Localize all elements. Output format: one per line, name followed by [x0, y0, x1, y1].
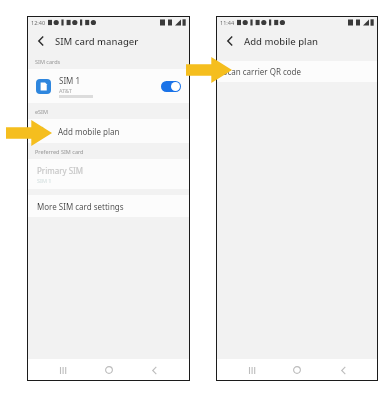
staticText: Scan carrier QR code	[223, 66, 302, 77]
staticText: eSIM	[35, 108, 48, 115]
button[interactable]: Back	[333, 360, 353, 380]
button[interactable]: Recents	[53, 360, 73, 380]
button[interactable]: Add mobile plan	[27, 119, 190, 143]
staticText: Preferred SIM card	[35, 148, 84, 155]
button[interactable]: Toggle SIM 1	[161, 81, 181, 92]
staticText: 12:40	[31, 19, 46, 26]
button[interactable]: SIM 1	[27, 69, 190, 103]
staticText: SIM 1	[59, 75, 81, 86]
button[interactable]: More SIM card settings	[27, 195, 190, 217]
staticText: More SIM card settings	[37, 201, 124, 212]
button[interactable]: Primary SIM	[27, 159, 190, 189]
button[interactable]: Back	[144, 360, 164, 380]
button[interactable]: Scan carrier QR code	[216, 61, 378, 82]
button[interactable]: Back	[222, 33, 238, 49]
staticText: AT&T	[59, 87, 72, 94]
staticText: Primary SIM	[37, 165, 83, 176]
button[interactable]: Back	[33, 33, 49, 49]
staticText: Add mobile plan	[244, 35, 319, 48]
staticText: Add mobile plan	[58, 126, 120, 137]
staticText: SIM cards	[35, 58, 61, 65]
button[interactable]: Home	[287, 360, 307, 380]
staticText: SIM 1	[37, 177, 52, 184]
staticText: SIM card manager	[55, 35, 139, 48]
staticText: 11:44	[220, 19, 235, 26]
button[interactable]: Home	[99, 360, 119, 380]
button[interactable]: Recents	[242, 360, 262, 380]
